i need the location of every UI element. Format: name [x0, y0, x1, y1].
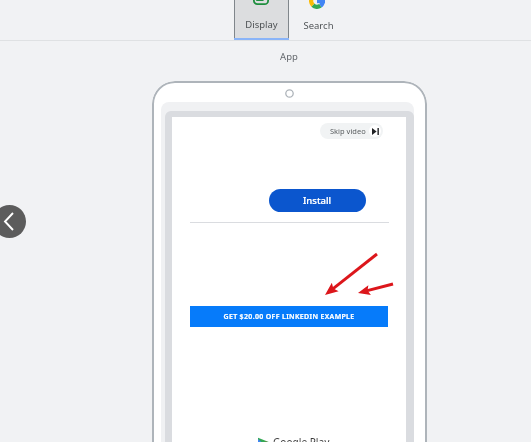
button[interactable]: GET $20.00 OFF LINKEDIN EXAMPLE	[190, 306, 388, 327]
staticText: App	[249, 50, 329, 63]
button[interactable]: Skip video	[320, 123, 383, 139]
staticText: Google Play	[273, 435, 330, 442]
button[interactable]: Display	[234, 0, 289, 40]
staticText: Search	[291, 19, 346, 32]
staticText: Skip video	[330, 126, 366, 136]
staticText: Install	[303, 194, 332, 207]
button[interactable]: Install	[269, 189, 366, 212]
staticText: Display	[234, 18, 289, 31]
button[interactable]: Search	[291, 0, 346, 39]
button[interactable]: Back	[0, 205, 26, 238]
staticText: GET $20.00 OFF LINKEDIN EXAMPLE	[223, 312, 355, 322]
